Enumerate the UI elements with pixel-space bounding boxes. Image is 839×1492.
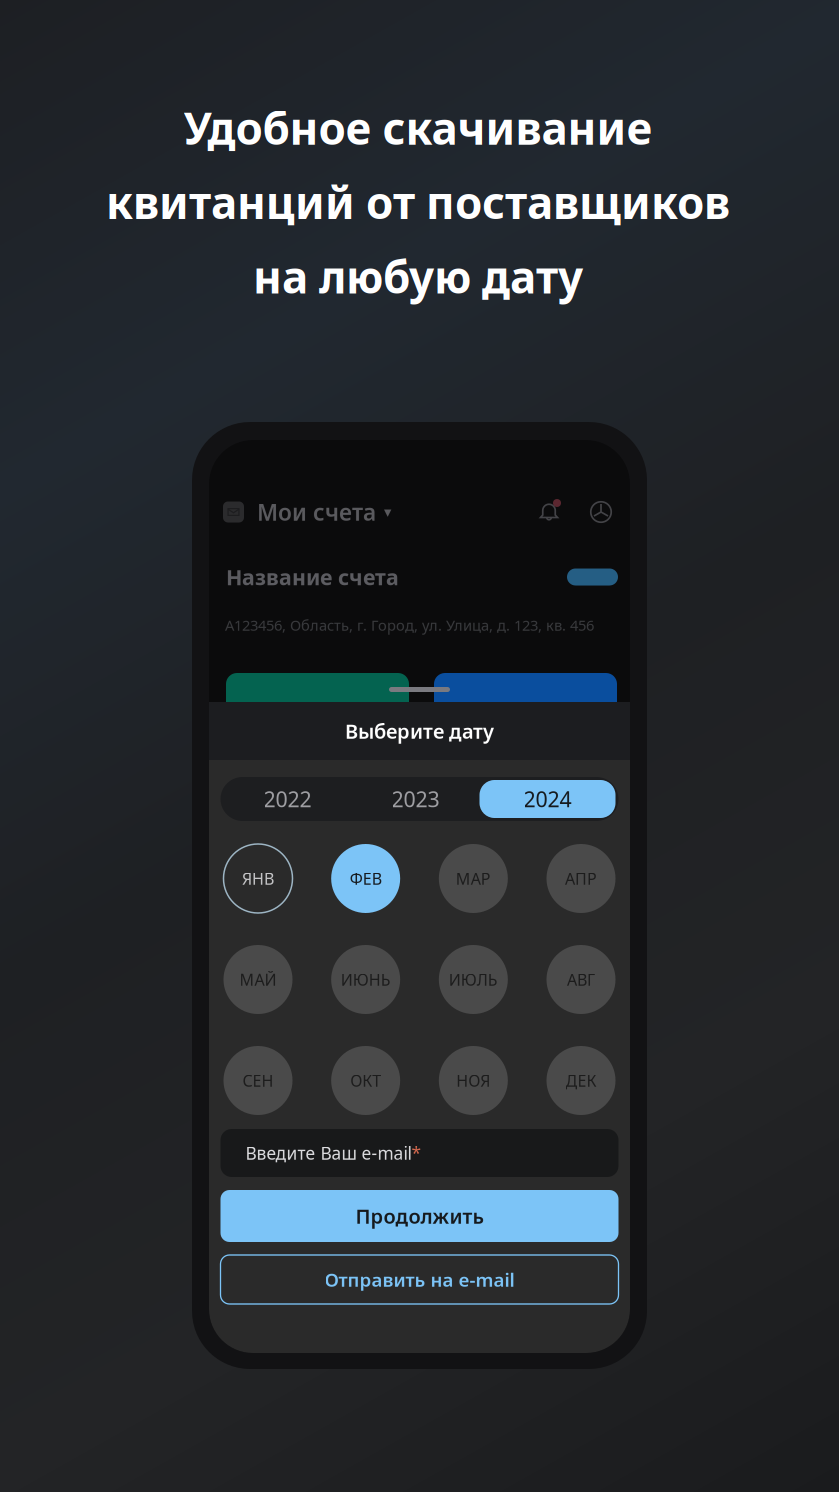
staticText: А123456, Область, г. Город, ул. Улица, д… [225, 615, 594, 635]
staticText: 2023 [391, 785, 439, 813]
staticText: 2022 [263, 785, 311, 813]
button[interactable]: АПР [546, 844, 615, 913]
button[interactable]: 2024 [479, 780, 615, 818]
staticText: Удобное скачивание [183, 98, 652, 157]
staticText: ▾ [384, 504, 391, 520]
button[interactable]: ИЮНЬ [331, 945, 400, 1014]
staticText: ФЕВ [350, 868, 382, 889]
button[interactable]: МАЙ [223, 945, 292, 1014]
button[interactable]: 2023 [351, 780, 479, 818]
button[interactable]: СЕН [223, 1046, 292, 1115]
button[interactable]: Account [223, 487, 244, 537]
staticText: ЯНВ [242, 868, 274, 889]
staticText: ДЕК [565, 1070, 596, 1091]
staticText: на любую дату [253, 247, 583, 306]
staticText: МАР [456, 868, 491, 889]
button[interactable]: 2022 [223, 780, 351, 818]
button[interactable]: Notifications [534, 487, 564, 537]
staticText: * [411, 1141, 421, 1164]
button[interactable]: ИЮЛЬ [439, 945, 508, 1014]
staticText: ИЮЛЬ [449, 969, 498, 990]
button[interactable]: АВГ [546, 945, 615, 1014]
staticText: СЕН [242, 1070, 273, 1091]
button[interactable]: ОКТ [331, 1046, 400, 1115]
button[interactable]: Отправить на e-mail [220, 1255, 618, 1304]
button[interactable]: Продолжить [220, 1190, 618, 1242]
button[interactable]: Введите Ваш e-mail [220, 1129, 618, 1177]
staticText: ИЮНЬ [341, 969, 391, 990]
button[interactable]: МАР [439, 844, 508, 913]
staticText: ОКТ [350, 1070, 381, 1091]
staticText: Название счета [226, 563, 399, 591]
staticText: Выберите дату [345, 718, 494, 744]
staticText: Введите Ваш e-mail [245, 1141, 411, 1164]
staticText: НОЯ [456, 1070, 490, 1091]
staticText: 2024 [523, 785, 571, 813]
staticText: Отправить на e-mail [324, 1267, 514, 1292]
button[interactable]: ФЕВ [331, 844, 400, 913]
button[interactable]: НОЯ [439, 1046, 508, 1115]
staticText: АПР [565, 868, 597, 889]
button[interactable]: Мои счета [244, 487, 391, 537]
staticText: квитанций от поставщиков [106, 173, 730, 231]
button[interactable]: ЯНВ [223, 844, 292, 913]
button[interactable]: ДЕК [546, 1046, 615, 1115]
button[interactable]: Settings [564, 487, 616, 537]
staticText: Мои счета [257, 497, 376, 527]
staticText: АВГ [567, 969, 595, 990]
staticText: Продолжить [355, 1203, 483, 1229]
button[interactable]: Pay [226, 673, 409, 717]
staticText: МАЙ [239, 969, 276, 990]
button[interactable]: Receipts [434, 673, 617, 717]
